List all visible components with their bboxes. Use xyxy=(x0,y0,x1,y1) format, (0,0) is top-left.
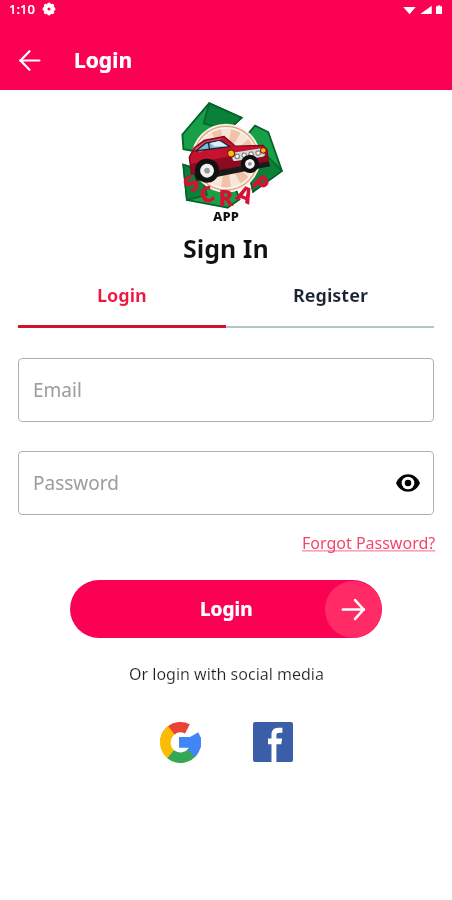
button[interactable]: Email xyxy=(18,358,434,422)
button[interactable]: Sign in with Google xyxy=(157,719,203,765)
button[interactable]: Login xyxy=(18,281,226,309)
button[interactable]: Sign in with Facebook xyxy=(250,719,296,765)
button[interactable]: Show password xyxy=(393,468,423,498)
staticText: Or login with social media xyxy=(129,663,324,685)
button[interactable]: Back xyxy=(9,40,49,80)
staticText: Login xyxy=(74,46,133,75)
staticText: 1:10 xyxy=(9,0,35,18)
staticText: Password xyxy=(33,470,119,496)
button[interactable]: Forgot Password? xyxy=(302,532,436,554)
button[interactable]: Login xyxy=(70,580,382,638)
staticText: Email xyxy=(33,377,82,403)
staticText: Login xyxy=(97,283,147,308)
button[interactable]: Register xyxy=(226,281,434,309)
button[interactable]: Password xyxy=(18,451,434,515)
staticText: Login xyxy=(200,596,253,622)
staticText: Sign In xyxy=(183,231,269,265)
staticText: Register xyxy=(293,283,368,308)
